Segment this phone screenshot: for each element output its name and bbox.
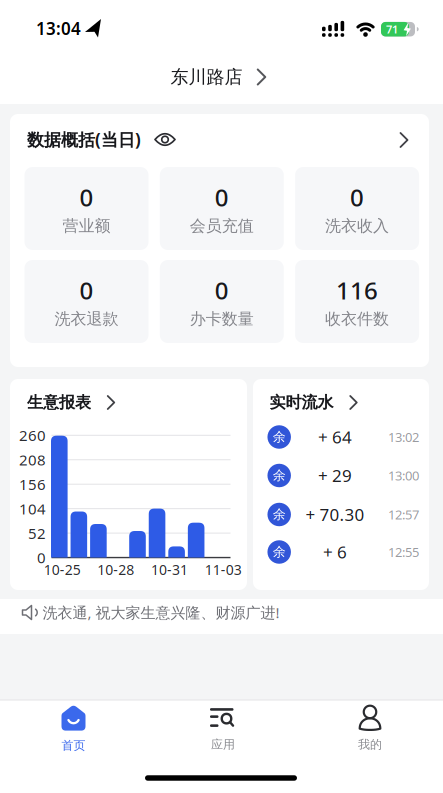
staticText: 10-31 [151,560,188,579]
button[interactable] [253,379,429,590]
staticText: 12:57 [388,506,419,523]
staticText: 0 [79,274,93,306]
staticText: 营业额 [62,216,110,236]
staticText: 实时流水 [269,393,333,412]
button[interactable]: 生意报表 [27,391,187,413]
staticText: 洗衣通, 祝大家生意兴隆、财源广进! [42,602,279,622]
staticText: 0 [79,181,93,213]
staticText: 12:55 [388,543,419,561]
staticText: 首页 [61,738,85,753]
staticText: 生意报表 [27,393,91,412]
staticText: 71 [386,22,398,36]
staticText: 116 [336,274,378,306]
staticText: 洗衣收入 [325,216,389,236]
button[interactable]: 东川路店 [170,66,271,88]
staticText: 104 [19,499,46,519]
staticText: 0 [350,181,364,213]
staticText: + 29 [318,464,352,487]
staticText: 13:04 [36,17,81,40]
button[interactable]: 数据概括(当日) [27,127,287,151]
staticText: 156 [19,474,46,494]
staticText: 数据概括(当日) [27,128,141,151]
staticText: 13:02 [388,428,419,446]
staticText: + 64 [318,426,352,448]
staticText: 13:00 [388,467,419,484]
staticText: 11-03 [205,560,242,579]
staticText: + 70.30 [305,503,364,526]
button[interactable]: 应用 [183,703,263,755]
staticText: 余 [273,429,286,445]
button[interactable]: 实时流水 [269,391,409,413]
staticText: 10-28 [97,560,134,579]
staticText: 我的 [358,737,382,752]
staticText: 0 [215,274,229,306]
staticText: 10-25 [44,560,81,579]
staticText: 0 [37,548,46,567]
staticText: 0 [215,181,229,213]
staticText: 余 [273,506,286,522]
staticText: 办卡数量 [190,309,254,329]
button[interactable] [10,114,429,367]
staticText: 余 [273,467,286,483]
staticText: 会员充值 [190,216,254,236]
staticText: 东川路店 [170,66,242,88]
button[interactable]: 首页 [33,703,113,755]
staticText: 洗衣退款 [54,309,118,329]
staticText: + 6 [323,541,347,563]
staticText: 余 [273,544,286,560]
staticText: 208 [19,450,46,470]
staticText: 应用 [211,737,235,752]
button[interactable]: 我的 [330,703,410,755]
staticText: 收衣件数 [325,309,389,329]
staticText: 52 [28,523,46,543]
staticText: 260 [19,425,46,445]
button[interactable] [10,379,247,590]
